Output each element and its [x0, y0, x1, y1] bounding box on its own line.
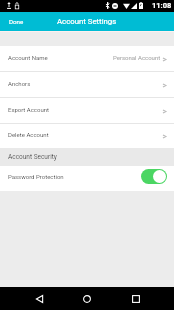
- button[interactable]: Recent apps: [124, 287, 148, 310]
- button[interactable]: Home: [75, 287, 99, 310]
- button[interactable]: Done: [0, 15, 33, 28]
- staticText: Account Security: [8, 153, 57, 161]
- staticText: Account Settings: [57, 17, 117, 26]
- button[interactable]: Password Protection toggle: [141, 169, 167, 184]
- button[interactable]: Anchors: [0, 72, 174, 98]
- button[interactable]: Export Account: [0, 98, 174, 124]
- button[interactable]: Back: [27, 287, 51, 310]
- staticText: Anchors: [8, 80, 31, 87]
- staticText: Password Protection: [8, 173, 64, 180]
- staticText: Personal Account: [113, 54, 161, 61]
- button[interactable]: Account Name: [0, 46, 174, 72]
- staticText: Delete Account: [8, 131, 49, 138]
- staticText: Done: [9, 18, 24, 25]
- button[interactable]: Password Protection: [0, 166, 174, 191]
- staticText: 11:08: [152, 1, 172, 10]
- staticText: Export Account: [8, 106, 50, 113]
- staticText: Account Name: [8, 54, 48, 61]
- button[interactable]: Delete Account: [0, 124, 174, 148]
